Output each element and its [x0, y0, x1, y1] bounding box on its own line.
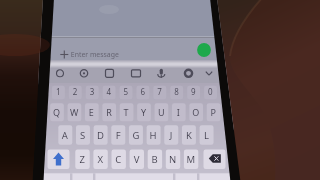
button[interactable]: Phone held in hand showing messaging app…: [0, 0, 320, 180]
